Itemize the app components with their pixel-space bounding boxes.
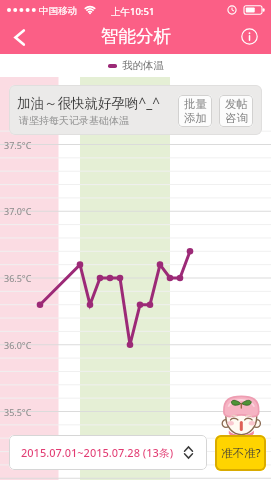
button[interactable]: Info bbox=[237, 24, 261, 48]
button[interactable]: 批量 bbox=[178, 95, 212, 127]
staticText: 中国移动 bbox=[39, 5, 77, 17]
staticText: 请坚持每天记录基础体温 bbox=[19, 114, 129, 127]
staticText: 加油～很快就好孕哟^_^ bbox=[17, 94, 160, 112]
staticText: 37.0°C bbox=[4, 205, 32, 217]
staticText: 我的体温 bbox=[122, 59, 164, 72]
staticText: 批量 bbox=[184, 97, 207, 111]
staticText: 36.0°C bbox=[4, 339, 32, 351]
button[interactable]: 发帖 bbox=[219, 95, 253, 127]
staticText: 发帖 bbox=[225, 97, 248, 111]
staticText: 35.5°C bbox=[4, 406, 32, 418]
staticText: 添加 bbox=[184, 111, 207, 125]
staticText: 37.5°C bbox=[4, 139, 32, 151]
staticText: 2015.07.01~2015.07.28 (13条) bbox=[21, 445, 174, 460]
staticText: 智能分析 bbox=[101, 25, 171, 47]
button[interactable]: 准不准? bbox=[212, 393, 270, 477]
button[interactable]: 2015.07.01~2015.07.28 (13条) bbox=[9, 435, 207, 470]
staticText: 上午10:51 bbox=[111, 5, 155, 18]
button[interactable]: Back bbox=[0, 20, 38, 54]
staticText: 36.5°C bbox=[4, 272, 32, 284]
staticText: 准不准? bbox=[221, 445, 261, 461]
staticText: 咨询 bbox=[225, 111, 248, 125]
